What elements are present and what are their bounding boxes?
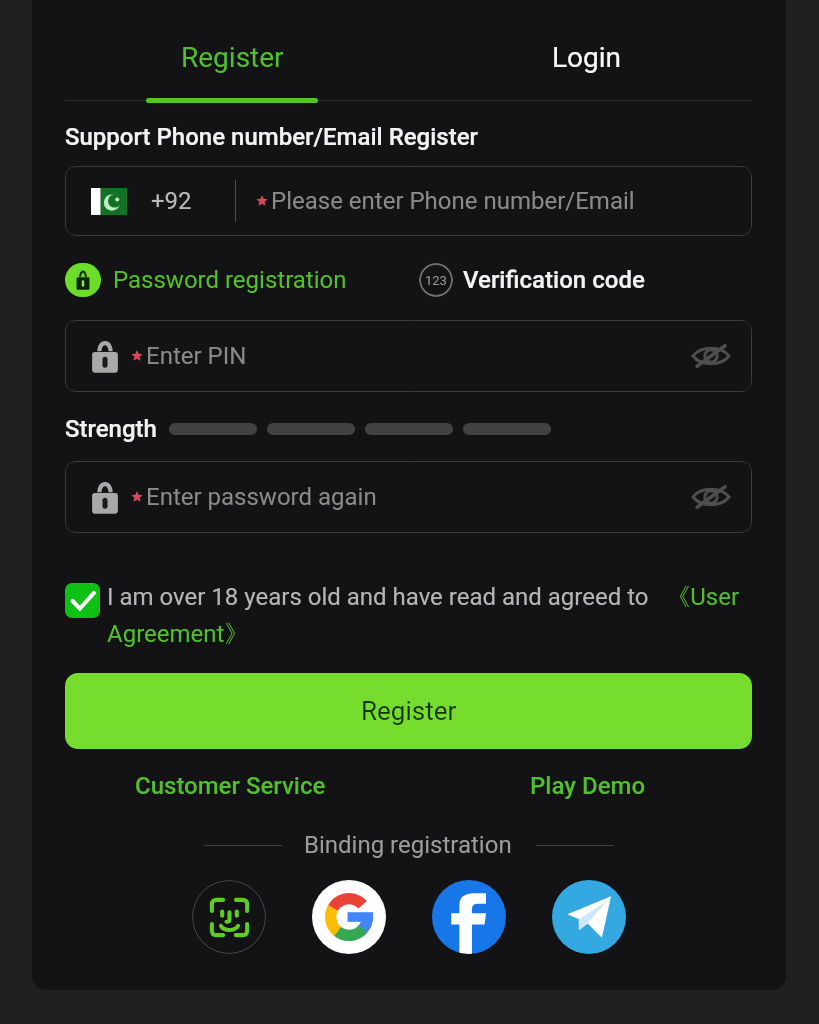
staticText: Register [181,41,284,74]
staticText: Support Phone number/Email Register [65,123,479,151]
button[interactable]: Face ID login [192,880,266,954]
button[interactable]: 123 [419,263,645,297]
button[interactable]: +92 [65,166,752,236]
staticText: Please enter Phone number/Email [271,187,635,215]
button[interactable]: Show password [689,475,733,519]
button[interactable]: Google login [312,880,386,954]
staticText: Strength [65,415,157,443]
staticText: Verification code [463,266,645,294]
button[interactable]: Register [65,673,752,749]
button[interactable]: Agree to user agreement [65,583,100,618]
button[interactable]: Telegram login [552,880,626,954]
button[interactable]: Password registration [65,263,347,297]
button[interactable]: Register [112,0,352,103]
staticText: Customer Service [135,772,326,800]
staticText: Register [361,696,457,726]
staticText: Binding registration [304,831,512,859]
staticText: Login [552,41,622,74]
button[interactable]: Login [467,0,707,103]
button[interactable]: Facebook login [432,880,506,954]
staticText: Enter password again [146,483,377,511]
staticText: +92 [151,187,192,215]
button[interactable]: Enter password again [65,461,752,533]
staticText: I am over 18 years old and have read and… [107,582,752,649]
staticText: Password registration [113,266,347,294]
staticText: Enter PIN [146,342,247,370]
staticText: 123 [425,273,447,288]
button[interactable]: Play Demo [468,769,708,803]
staticText: Play Demo [530,772,646,800]
button[interactable]: Enter PIN [65,320,752,392]
button[interactable]: Show password [689,334,733,378]
button[interactable]: Customer Service [110,769,350,803]
